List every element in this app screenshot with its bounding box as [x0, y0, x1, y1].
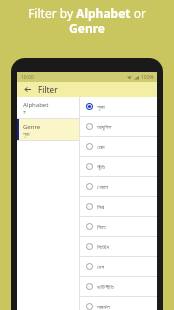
- staticText: Genre: [23, 123, 41, 131]
- staticText: বিরহ: [97, 224, 106, 230]
- button[interactable]: বিরহ: [80, 217, 157, 236]
- button[interactable]: স্মৃতি: [80, 157, 157, 176]
- button[interactable]: বিচ্ছেদ: [80, 237, 157, 256]
- button[interactable]: ভক্তিগীতি: [80, 277, 157, 296]
- button[interactable]: Back: [22, 84, 33, 95]
- staticText: Filter: [38, 84, 58, 95]
- staticText: পূজা: [23, 132, 30, 137]
- staticText: ভক্তিগীতি: [97, 284, 114, 290]
- button[interactable]: দেশ: [80, 257, 157, 276]
- button[interactable]: Alphabet: [17, 97, 79, 118]
- staticText: 10:00: [21, 74, 34, 81]
- staticText: নজরুল: [97, 304, 110, 310]
- staticText: মিশ্র: [97, 204, 104, 210]
- staticText: পূজা: [97, 104, 105, 110]
- staticText: বিচ্ছেদ: [97, 244, 110, 250]
- staticText: ক: [23, 110, 26, 115]
- staticText: খেয়াল: [97, 184, 109, 190]
- button[interactable]: মিশ্র: [80, 197, 157, 216]
- button[interactable]: আধুনিক: [80, 117, 157, 136]
- button[interactable]: Genre: [17, 119, 79, 140]
- staticText: আধুনিক: [97, 124, 112, 130]
- staticText: দেশ: [97, 264, 105, 270]
- staticText: 100%: [141, 74, 154, 81]
- staticText: প্রেম: [97, 144, 105, 150]
- staticText: স্মৃতি: [97, 164, 105, 170]
- button[interactable]: প্রেম: [80, 137, 157, 156]
- button[interactable]: নজরুল: [80, 297, 157, 310]
- button[interactable]: পূজা: [80, 97, 157, 116]
- staticText: Alphabet: [23, 101, 49, 109]
- button[interactable]: খেয়াল: [80, 177, 157, 196]
- staticText: Filter by Alphabet or Genre: [14, 5, 160, 36]
